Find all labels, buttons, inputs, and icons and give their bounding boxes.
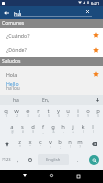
button[interactable]: v	[45, 136, 55, 152]
staticText: 2	[16, 114, 18, 118]
staticText: 7	[67, 114, 69, 118]
button[interactable]: English	[38, 154, 69, 165]
staticText: 6:21	[91, 1, 100, 7]
button[interactable]: Clear search	[83, 6, 92, 19]
staticText: ha	[13, 97, 19, 104]
staticText: ¿Dónde?	[6, 46, 27, 53]
staticText: e	[26, 107, 30, 115]
staticText: ha'lou	[6, 85, 20, 92]
staticText: w	[14, 107, 19, 115]
button[interactable]: d	[28, 121, 38, 136]
staticText: x	[28, 138, 32, 146]
button[interactable]: t	[43, 105, 53, 121]
staticText: @	[11, 130, 14, 134]
staticText: 5	[48, 114, 50, 118]
staticText: Hello	[6, 80, 19, 87]
staticText: _	[42, 130, 44, 134]
staticText: "	[29, 145, 31, 149]
staticText: :	[50, 145, 51, 149]
button[interactable]: u	[63, 105, 73, 121]
button[interactable]: i	[73, 105, 83, 121]
button[interactable]: Hola	[0, 66, 103, 82]
staticText: Saludos	[2, 58, 21, 65]
staticText: y	[57, 107, 60, 115]
staticText: h	[61, 123, 65, 131]
staticText: t	[47, 107, 50, 115]
staticText: b	[58, 138, 62, 146]
button[interactable]: n	[65, 136, 75, 152]
button[interactable]: ¿Dónde?	[0, 42, 103, 57]
staticText: 1	[5, 114, 7, 118]
staticText: i	[77, 107, 79, 115]
staticText: (	[83, 130, 84, 134]
staticText: r	[37, 107, 40, 115]
staticText: .	[77, 156, 79, 163]
staticText: &	[52, 130, 55, 134]
button[interactable]: En,	[31, 95, 61, 105]
staticText: k	[81, 123, 85, 131]
staticText: ¿Cuándo?	[6, 32, 30, 39]
button[interactable]: h	[58, 121, 68, 136]
staticText: p	[96, 107, 100, 115]
staticText: ;	[60, 145, 61, 149]
staticText: d	[31, 123, 35, 131]
button[interactable]: l	[88, 121, 98, 136]
staticText: n	[68, 138, 72, 146]
staticText: ha	[14, 10, 22, 18]
button[interactable]: ?123	[0, 152, 12, 167]
button[interactable]: q	[0, 105, 11, 121]
button[interactable]: Search	[85, 152, 103, 167]
staticText: m	[77, 138, 83, 146]
button[interactable]: m	[75, 136, 85, 152]
staticText: 4	[38, 114, 40, 118]
button[interactable]: More suggestions	[91, 95, 103, 105]
staticText: !	[70, 145, 71, 149]
button[interactable]: ha	[0, 95, 31, 105]
button[interactable]: o	[83, 105, 93, 121]
button[interactable]: w	[11, 105, 22, 121]
button[interactable]: Home	[45, 170, 58, 183]
staticText: q	[4, 107, 8, 115]
button[interactable]: ¿Cuándo?	[0, 28, 103, 42]
button[interactable]: z	[14, 136, 25, 152]
button[interactable]: p	[93, 105, 103, 121]
staticText: En,	[42, 97, 50, 104]
button[interactable]: r	[33, 105, 43, 121]
staticText: v	[49, 138, 52, 146]
button[interactable]: Backspace	[85, 136, 103, 152]
staticText: #	[22, 130, 24, 134]
staticText: Comunes	[2, 20, 25, 27]
button[interactable]: Back	[18, 170, 31, 183]
staticText: '	[40, 145, 41, 149]
staticText: l	[92, 123, 94, 131]
button[interactable]: .	[71, 152, 85, 167]
button[interactable]: k	[78, 121, 88, 136]
staticText: +	[72, 130, 74, 134]
button[interactable]: Back	[0, 6, 13, 19]
staticText: j	[72, 123, 74, 131]
button[interactable]: f	[38, 121, 48, 136]
button[interactable]: Recents	[72, 170, 85, 183]
button[interactable]: ,	[12, 152, 23, 167]
button[interactable]: b	[55, 136, 65, 152]
staticText: f	[42, 123, 44, 131]
staticText: ?123	[2, 157, 11, 162]
button[interactable]: a	[6, 121, 17, 136]
button[interactable]: e	[22, 105, 33, 121]
button[interactable]: Shift	[0, 136, 14, 152]
staticText: -	[63, 130, 64, 134]
staticText: g	[51, 123, 55, 131]
button[interactable]: y	[53, 105, 63, 121]
staticText: 3	[27, 114, 29, 118]
button[interactable]: s	[17, 121, 28, 136]
button[interactable]: g	[48, 121, 58, 136]
button[interactable]: j	[68, 121, 78, 136]
staticText: )	[93, 130, 94, 134]
staticText: ?	[79, 145, 81, 149]
button[interactable]: x	[25, 136, 35, 152]
button[interactable]: c	[35, 136, 45, 152]
staticText: c	[39, 138, 42, 146]
button[interactable]: Emoji	[23, 152, 36, 167]
staticText: s	[21, 123, 24, 131]
